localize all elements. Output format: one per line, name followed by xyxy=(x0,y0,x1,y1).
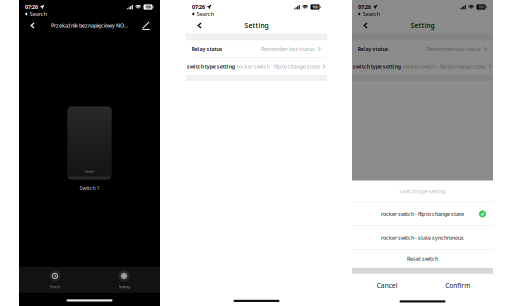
button[interactable]: switch type setting xyxy=(186,58,327,75)
button[interactable]: Back xyxy=(191,17,209,33)
staticText: rocker switch - flip to change state xyxy=(237,63,320,70)
staticText: rocker switch - state synchronous xyxy=(381,234,464,241)
staticText: 07:26 xyxy=(25,3,38,11)
button[interactable]: Confirm xyxy=(422,274,493,297)
staticText: Search xyxy=(197,10,214,18)
button[interactable]: Relay status xyxy=(352,40,493,57)
staticText: 100 xyxy=(478,4,484,10)
button[interactable]: rocker switch - state synchronous xyxy=(352,226,493,249)
staticText: Confirm xyxy=(445,281,470,290)
staticText: Remember last status xyxy=(427,45,481,53)
button[interactable]: Timer xyxy=(35,270,75,290)
staticText: Setting xyxy=(118,284,129,289)
staticText: switch type setting xyxy=(187,63,235,70)
staticText: 07:26 xyxy=(192,3,205,11)
button[interactable]: Back xyxy=(24,17,42,33)
button[interactable]: Back xyxy=(357,17,375,33)
staticText: Remember last status xyxy=(261,45,315,53)
staticText: Switch 1 xyxy=(79,184,99,192)
staticText: rocker switch - flip to change state xyxy=(403,63,486,70)
button[interactable]: Setting xyxy=(104,270,144,290)
button[interactable]: rocker switch - flip to change state xyxy=(352,202,493,225)
staticText: Search xyxy=(30,10,47,18)
button[interactable]: Cancel xyxy=(352,274,422,297)
staticText: Reset switch xyxy=(407,255,438,262)
staticText: 100 xyxy=(312,4,318,10)
staticText: switch type setting xyxy=(399,188,445,195)
staticText: Setting xyxy=(244,21,268,30)
staticText: 100 xyxy=(145,4,151,10)
staticText: 07:26 xyxy=(358,3,371,11)
button[interactable]: switch type setting xyxy=(352,58,493,75)
button[interactable]: Edit xyxy=(137,17,155,33)
button[interactable]: Reset switch xyxy=(352,250,493,268)
staticText: Timer xyxy=(49,284,60,289)
staticText: Setting xyxy=(410,21,434,30)
staticText: Cancel xyxy=(377,281,398,290)
staticText: switch type setting xyxy=(353,63,401,70)
staticText: Relay status xyxy=(191,45,222,53)
staticText: rocker switch - flip to change state xyxy=(381,210,464,217)
button[interactable]: Relay status xyxy=(186,40,327,57)
staticText: Relay status xyxy=(357,45,388,53)
staticText: Search xyxy=(363,10,380,18)
staticText: Przekaźnik beznapięciowy NO… xyxy=(51,22,128,29)
